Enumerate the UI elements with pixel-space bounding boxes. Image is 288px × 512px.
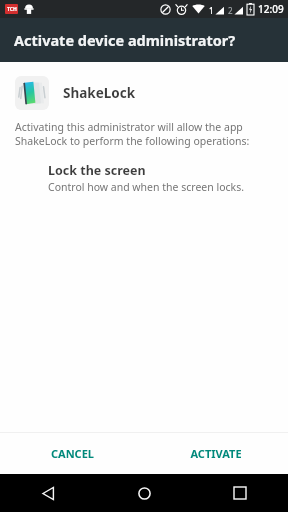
button[interactable]: CANCEL (39, 439, 106, 468)
staticText: ACTIVATE (190, 446, 242, 461)
staticText: CANCEL (51, 446, 94, 461)
staticText: Activate device administrator? (14, 30, 236, 50)
button[interactable]: Back (31, 476, 65, 510)
staticText: Control how and when the screen locks. (48, 180, 244, 194)
staticText: Lock the screen (48, 162, 146, 179)
staticText: 2 (228, 5, 233, 16)
staticText: Activating this administrator will allow… (15, 120, 250, 148)
button[interactable]: Recent apps (223, 476, 257, 510)
staticText: 1 (209, 5, 214, 16)
button[interactable]: ACTIVATE (178, 439, 254, 468)
staticText: ShakeLock (63, 84, 136, 102)
button[interactable]: Home (127, 476, 161, 510)
staticText: 12:09 (258, 2, 284, 16)
staticText: TCH (7, 6, 17, 13)
